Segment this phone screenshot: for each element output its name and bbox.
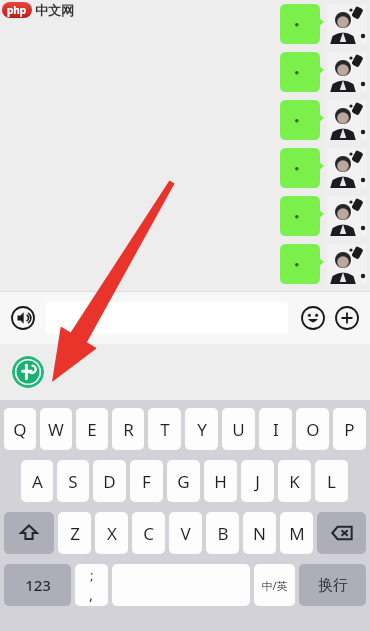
staticText: L <box>327 470 336 493</box>
button[interactable]: O <box>296 408 329 450</box>
staticText: K <box>289 470 300 493</box>
staticText: Y <box>197 418 207 441</box>
button[interactable]: Y <box>185 408 218 450</box>
button[interactable] <box>280 52 324 92</box>
button[interactable]: Q <box>4 408 36 450</box>
staticText: Z <box>70 522 80 545</box>
button[interactable]: Translate plugin <box>12 356 44 388</box>
staticText: ; <box>90 566 94 584</box>
button[interactable]: Contact avatar <box>327 196 367 236</box>
staticText: C <box>143 522 154 545</box>
staticText: S <box>68 470 78 493</box>
staticText: R <box>123 418 134 441</box>
button[interactable]: Contact avatar <box>327 4 367 44</box>
button[interactable] <box>280 4 324 44</box>
button[interactable]: Voice input <box>8 303 38 333</box>
staticText: php <box>7 3 27 17</box>
button[interactable] <box>280 100 324 140</box>
button[interactable]: K <box>278 460 311 502</box>
staticText: D <box>103 470 116 493</box>
staticText: , <box>89 584 94 604</box>
button[interactable]: E <box>76 408 108 450</box>
staticText: X <box>107 522 117 545</box>
staticText: M <box>289 522 305 545</box>
button[interactable]: I <box>259 408 292 450</box>
staticText: N <box>253 522 266 545</box>
staticText: W <box>48 418 64 441</box>
button[interactable]: ; <box>75 564 108 606</box>
button[interactable]: U <box>222 408 255 450</box>
button[interactable]: Contact avatar <box>327 100 367 140</box>
button[interactable] <box>280 196 324 236</box>
staticText: G <box>177 470 190 493</box>
button[interactable]: 中/英 <box>254 564 295 606</box>
button[interactable]: S <box>57 460 89 502</box>
staticText: 123 <box>25 575 51 595</box>
staticText: B <box>217 522 229 545</box>
button[interactable]: F <box>130 460 163 502</box>
button[interactable] <box>280 244 324 284</box>
staticText: E <box>87 418 97 441</box>
button[interactable]: 123 <box>4 564 71 606</box>
staticText: U <box>232 418 245 441</box>
staticText: 换行 <box>318 576 348 595</box>
button[interactable]: Emoji <box>298 303 328 333</box>
staticText: 中/英 <box>261 578 288 593</box>
button[interactable]: Contact avatar <box>327 244 367 284</box>
button[interactable] <box>280 148 324 188</box>
button[interactable] <box>4 512 54 554</box>
button[interactable]: 换行 <box>299 564 366 606</box>
button[interactable]: H <box>204 460 237 502</box>
button[interactable]: N <box>243 512 276 554</box>
button[interactable] <box>317 512 366 554</box>
button[interactable]: More options <box>332 303 362 333</box>
button[interactable]: V <box>169 512 202 554</box>
button[interactable]: A <box>21 460 53 502</box>
staticText: O <box>306 418 320 441</box>
button[interactable] <box>46 302 288 334</box>
staticText: Q <box>13 418 27 441</box>
button[interactable]: J <box>241 460 274 502</box>
staticText: A <box>32 470 43 493</box>
button[interactable]: B <box>206 512 239 554</box>
staticText: T <box>160 418 170 441</box>
staticText: H <box>214 470 227 493</box>
button[interactable]: Z <box>58 512 91 554</box>
button[interactable]: W <box>40 408 72 450</box>
staticText: 中文网 <box>35 2 74 18</box>
button[interactable]: D <box>93 460 126 502</box>
staticText: V <box>180 522 191 545</box>
button[interactable]: Contact avatar <box>327 52 367 92</box>
button[interactable]: P <box>333 408 366 450</box>
button[interactable]: R <box>112 408 144 450</box>
button[interactable]: L <box>315 460 348 502</box>
button[interactable]: C <box>132 512 165 554</box>
button[interactable]: G <box>167 460 200 502</box>
button[interactable]: X <box>95 512 128 554</box>
button[interactable]: Contact avatar <box>327 148 367 188</box>
button[interactable]: T <box>148 408 181 450</box>
staticText: I <box>273 418 279 441</box>
staticText: F <box>142 470 151 493</box>
staticText: J <box>255 470 260 493</box>
button[interactable]: M <box>280 512 313 554</box>
staticText: P <box>344 418 355 441</box>
